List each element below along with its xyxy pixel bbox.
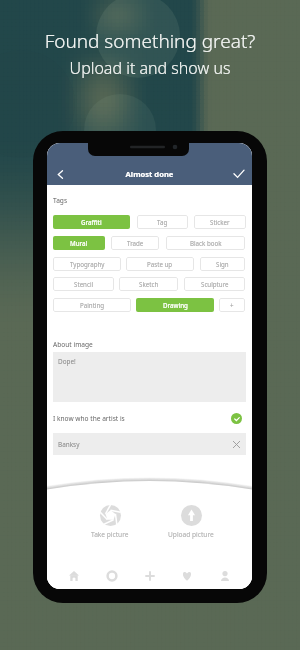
button[interactable]: Sticker xyxy=(194,215,246,229)
button[interactable]: Upload picture xyxy=(161,505,221,539)
staticText: Trade xyxy=(127,239,144,247)
staticText: + xyxy=(230,301,234,309)
button[interactable]: Add xyxy=(139,565,161,587)
staticText: Upload picture xyxy=(168,530,214,539)
button[interactable]: Take picture xyxy=(80,505,140,539)
staticText: Sign xyxy=(216,260,229,268)
button[interactable]: Paste up xyxy=(126,257,194,271)
staticText: Typography xyxy=(70,260,105,268)
staticText: Painting xyxy=(80,301,105,309)
button[interactable]: Trade xyxy=(111,236,159,250)
staticText: Sticker xyxy=(210,218,230,226)
button[interactable]: Painting xyxy=(53,298,131,312)
staticText: Paste up xyxy=(147,260,173,268)
button[interactable]: Mural xyxy=(53,236,105,250)
staticText: Tags xyxy=(53,196,68,205)
button[interactable]: Typography xyxy=(53,257,121,271)
staticText: I know who the artist is xyxy=(53,414,125,423)
button[interactable]: Done xyxy=(228,163,250,185)
staticText: Sculpture xyxy=(201,280,229,288)
button[interactable]: Explore xyxy=(101,565,123,587)
button[interactable]: Dope! xyxy=(53,352,246,402)
button[interactable]: Sculpture xyxy=(184,277,245,291)
button[interactable]: Home xyxy=(63,565,85,587)
button[interactable]: Sign xyxy=(200,257,245,271)
staticText: Tag xyxy=(157,218,168,226)
staticText: Banksy xyxy=(58,440,80,449)
other: Clear xyxy=(233,441,240,448)
staticText: Dope! xyxy=(58,357,76,366)
button[interactable]: Graffiti xyxy=(53,215,130,229)
staticText: About image xyxy=(53,340,93,349)
button[interactable]: Drawing xyxy=(136,298,214,312)
button[interactable]: + xyxy=(219,298,245,312)
staticText: Upload it and show us xyxy=(0,57,300,79)
staticText: Found something great? xyxy=(0,28,300,54)
button[interactable]: Tag xyxy=(137,215,188,229)
staticText: Graffiti xyxy=(81,218,102,226)
button[interactable]: Sketch xyxy=(119,277,178,291)
button[interactable]: Favorites xyxy=(176,565,198,587)
button[interactable]: Banksy xyxy=(53,433,246,455)
staticText: Almost done xyxy=(47,169,252,179)
button[interactable]: Stencil xyxy=(53,277,114,291)
staticText: Black book xyxy=(190,239,222,247)
button[interactable]: Back xyxy=(49,163,71,185)
button[interactable]: Black book xyxy=(166,236,245,250)
staticText: Sketch xyxy=(139,280,159,288)
staticText: Stencil xyxy=(74,280,94,288)
button[interactable]: Profile xyxy=(214,565,236,587)
button[interactable]: Artist confirmed xyxy=(231,413,242,424)
staticText: Drawing xyxy=(163,301,188,309)
staticText: Mural xyxy=(70,239,88,247)
staticText: Take picture xyxy=(91,530,129,539)
